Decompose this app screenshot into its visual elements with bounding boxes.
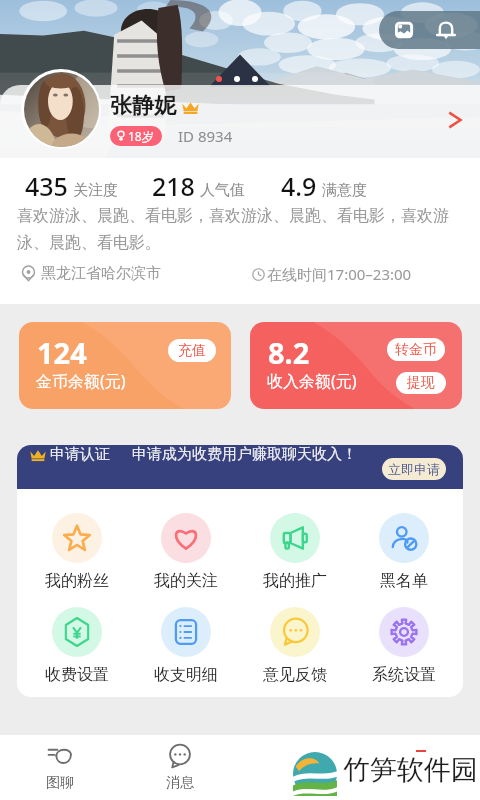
button[interactable]: 系统设置	[349, 607, 458, 685]
button[interactable]: 图聊	[0, 735, 120, 800]
button[interactable]: 124	[19, 322, 231, 409]
staticText: 在线时间17:00–23:00	[267, 264, 412, 284]
button[interactable]: 提现	[407, 372, 435, 394]
staticText: 我的推广	[263, 571, 327, 591]
button[interactable]: 意见反馈	[240, 607, 349, 685]
staticText: 转金币	[395, 341, 437, 359]
staticText: 收费设置	[45, 665, 109, 685]
staticText: 喜欢游泳、晨跑、看电影，喜欢游泳、晨跑、看电影，喜欢游泳、晨跑、看电影。	[17, 206, 460, 253]
staticText: 18岁	[128, 128, 154, 144]
staticText: 4.9	[281, 169, 317, 203]
button[interactable]: 消息	[120, 735, 240, 800]
staticText: 图聊	[46, 774, 74, 792]
staticText: 金币余额(元)	[36, 370, 126, 392]
staticText: 收入余额(元)	[267, 370, 357, 392]
button[interactable]: 申请认证	[17, 445, 463, 489]
button[interactable]: 黑名单	[349, 513, 458, 591]
button[interactable]: 充值	[178, 339, 206, 362]
staticText: 提现	[407, 374, 435, 392]
staticText: 张静妮	[110, 92, 176, 120]
staticText: 充值	[178, 342, 206, 360]
staticText: 系统设置	[372, 665, 436, 685]
button[interactable]: Profile photo	[21, 69, 101, 149]
staticText: 竹笋软件园	[343, 753, 478, 787]
button[interactable]: 我的关注	[131, 513, 240, 591]
staticText: 黑名单	[380, 571, 428, 591]
button[interactable]: 转金币	[395, 338, 437, 361]
staticText: 黑龙江省哈尔滨市	[41, 264, 161, 283]
staticText: 我的关注	[154, 571, 218, 591]
staticText: 收支明细	[154, 665, 218, 685]
staticText: 我的粉丝	[45, 571, 109, 591]
button[interactable]: 收费设置	[22, 607, 131, 685]
staticText: 满意度	[322, 181, 367, 200]
staticText: 申请成为收费用户赚取聊天收入！	[132, 445, 357, 464]
button[interactable]: Notifications	[435, 19, 457, 41]
staticText: 435	[25, 169, 68, 203]
staticText: 人气值	[200, 181, 245, 200]
staticText: 消息	[166, 774, 194, 792]
button[interactable]: 我的推广	[240, 513, 349, 591]
staticText: 关注度	[73, 181, 118, 200]
staticText: ID 8934	[178, 126, 233, 146]
staticText: 218	[152, 169, 195, 203]
button[interactable]: 我的粉丝	[22, 513, 131, 591]
staticText: 申请认证	[50, 445, 110, 464]
staticText: 立即申请	[388, 461, 440, 477]
button[interactable]: 收支明细	[131, 607, 240, 685]
button[interactable]: 立即申请	[382, 458, 446, 480]
staticText: 124	[37, 333, 87, 372]
staticText: 8.2	[268, 333, 310, 372]
staticText: 意见反馈	[263, 665, 327, 685]
button[interactable]: Photo album	[393, 19, 415, 41]
button[interactable]: 8.2	[250, 322, 462, 409]
